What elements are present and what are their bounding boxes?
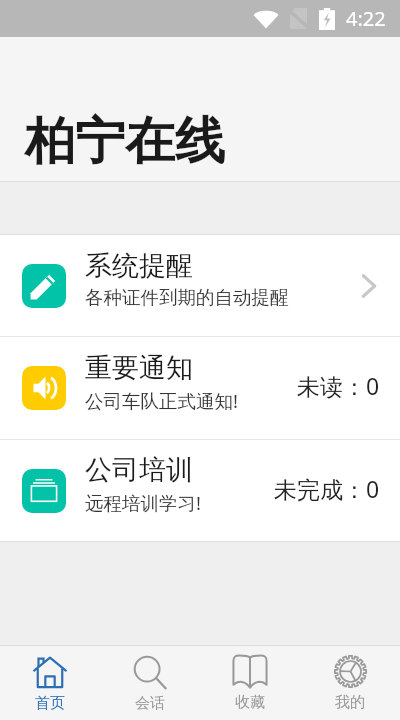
button[interactable]: 会话 xyxy=(100,646,200,720)
staticText: 未读：0 xyxy=(297,370,380,401)
staticText: 各种证件到期的自动提醒 xyxy=(85,286,289,309)
button[interactable]: 系统提醒 xyxy=(0,235,400,336)
staticText: 收藏 xyxy=(235,693,265,712)
staticText: 未完成：0 xyxy=(274,473,380,504)
button[interactable]: 收藏 xyxy=(200,646,300,720)
staticText: 我的 xyxy=(335,693,365,712)
staticText: 会话 xyxy=(135,694,165,713)
staticText: 系统提醒 xyxy=(85,249,193,283)
other: Open xyxy=(356,271,382,301)
button[interactable]: 我的 xyxy=(300,646,400,720)
staticText: 4:22 xyxy=(346,5,386,32)
staticText: 柏宁在线 xyxy=(25,110,225,173)
staticText: 远程培训学习! xyxy=(85,490,201,515)
button[interactable]: 公司培训 xyxy=(0,440,400,541)
staticText: 重要通知 xyxy=(85,351,193,385)
staticText: 首页 xyxy=(35,694,65,713)
staticText: 公司车队正式通知! xyxy=(85,388,238,413)
button[interactable]: 重要通知 xyxy=(0,337,400,439)
button[interactable]: 首页 xyxy=(0,646,100,720)
staticText: 公司培训 xyxy=(85,453,193,487)
